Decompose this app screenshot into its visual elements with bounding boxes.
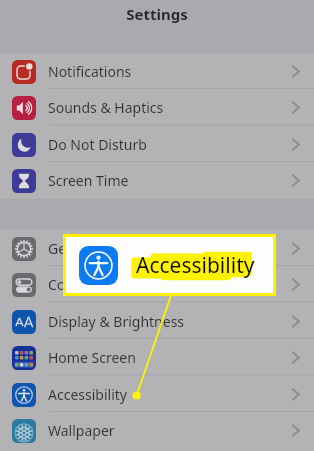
staticText: Screen Time xyxy=(48,171,129,190)
staticText: Accessibility xyxy=(136,251,255,280)
button[interactable]: Sounds & Haptics xyxy=(0,89,314,126)
staticText: Wallpaper xyxy=(48,421,115,440)
staticText: Sounds & Haptics xyxy=(48,98,164,117)
button[interactable]: General xyxy=(0,230,314,267)
staticText: General xyxy=(48,239,100,258)
staticText: Notifications xyxy=(48,62,132,81)
button[interactable]: Accessibility callout xyxy=(66,237,273,293)
staticText: Home Screen xyxy=(48,348,136,367)
staticText: Control Center xyxy=(48,275,145,294)
button[interactable]: Display & Brightness xyxy=(0,303,314,340)
staticText: Accessibility xyxy=(48,385,127,404)
button[interactable]: Notifications xyxy=(0,53,314,90)
button[interactable]: Settings xyxy=(0,0,314,53)
button[interactable]: Screen Time xyxy=(0,162,314,199)
button[interactable]: Wallpaper xyxy=(0,412,314,449)
staticText: Do Not Disturb xyxy=(48,135,147,154)
button[interactable]: Do Not Disturb xyxy=(0,126,314,163)
staticText: Settings xyxy=(126,4,188,24)
button[interactable]: Accessibility xyxy=(0,376,314,413)
button[interactable]: Control Center xyxy=(0,266,314,303)
staticText: Display & Brightness xyxy=(48,312,185,331)
button[interactable]: Home Screen xyxy=(0,339,314,376)
